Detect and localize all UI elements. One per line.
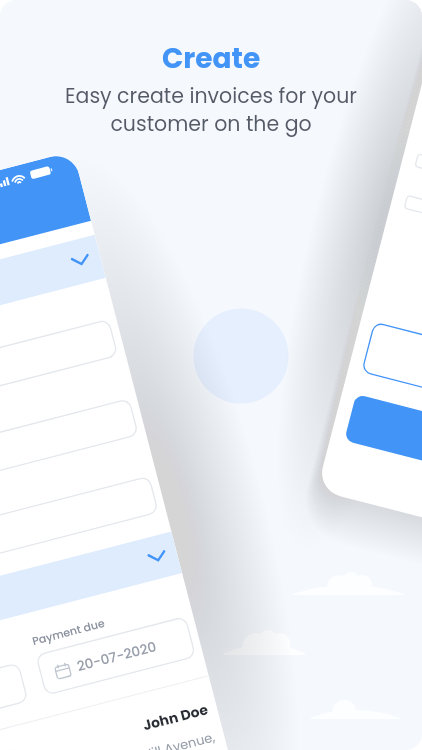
staticText: Easy create invoices for your customer o… <box>65 81 357 138</box>
staticText: Create <box>162 39 261 78</box>
